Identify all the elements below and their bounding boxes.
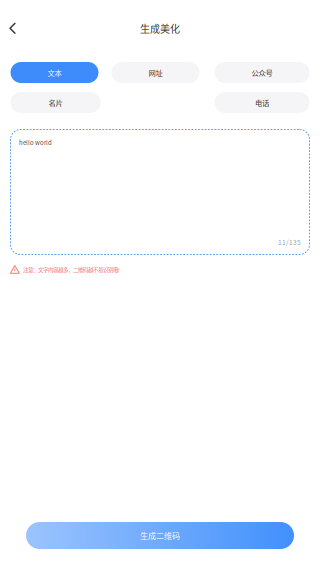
button[interactable]: 网址 xyxy=(111,62,199,83)
button[interactable]: 生成二维码 xyxy=(26,522,294,549)
button[interactable]: 电话 xyxy=(214,92,309,113)
staticText: 11/135 xyxy=(278,237,301,247)
staticText: 公众号 xyxy=(251,67,272,78)
button[interactable]: Back xyxy=(0,14,26,42)
button[interactable]: 文本 xyxy=(10,62,98,83)
staticText: 文本 xyxy=(47,67,61,78)
staticText: 生成二维码 xyxy=(140,530,180,541)
staticText: 电话 xyxy=(255,97,269,108)
staticText: 网址 xyxy=(148,67,162,78)
staticText: 生成美化 xyxy=(140,21,180,36)
button[interactable]: 公众号 xyxy=(214,62,309,83)
button[interactable]: 名片 xyxy=(10,92,100,113)
staticText: hello world xyxy=(19,138,52,147)
staticText: 注意：文字内容越多，二维码越不易识别哦! xyxy=(23,265,120,273)
staticText: 名片 xyxy=(48,97,62,108)
